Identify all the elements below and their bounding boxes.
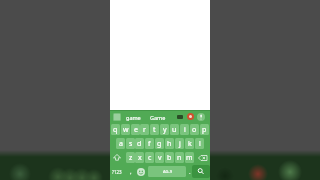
staticText: game — [126, 114, 141, 121]
button[interactable]: m — [185, 152, 194, 163]
button[interactable]: . — [187, 166, 193, 177]
staticText: Game — [150, 114, 166, 121]
button[interactable]: AG-9 — [148, 166, 186, 177]
staticText: h — [167, 139, 172, 149]
button[interactable]: j — [175, 138, 184, 149]
button[interactable]: b — [165, 152, 174, 163]
button[interactable] — [113, 113, 121, 121]
button[interactable]: u — [170, 124, 179, 135]
button[interactable]: r — [140, 124, 149, 135]
staticText: y — [163, 125, 167, 135]
staticText: m — [186, 153, 193, 163]
staticText: d — [137, 139, 142, 149]
button[interactable] — [177, 115, 183, 119]
button[interactable]: a — [116, 138, 125, 149]
button[interactable]: p — [200, 124, 209, 135]
button[interactable]: d — [135, 138, 144, 149]
button[interactable]: e — [131, 124, 140, 135]
staticText: z — [129, 153, 133, 163]
button[interactable]: l — [195, 138, 204, 149]
button[interactable]: y — [160, 124, 169, 135]
staticText: j — [179, 139, 181, 149]
button[interactable] — [197, 113, 205, 121]
button[interactable]: z — [126, 152, 135, 163]
button[interactable]: w — [121, 124, 130, 135]
staticText: n — [177, 153, 182, 163]
button[interactable] — [196, 152, 210, 163]
staticText: o — [192, 125, 197, 135]
button[interactable] — [192, 165, 210, 178]
staticText: k — [188, 139, 192, 149]
staticText: u — [172, 125, 177, 135]
staticText: f — [148, 139, 151, 149]
button[interactable]: i — [180, 124, 189, 135]
button[interactable]: o — [190, 124, 199, 135]
button[interactable]: game — [124, 112, 142, 122]
staticText: . — [189, 168, 191, 176]
staticText: a — [119, 139, 123, 149]
staticText: AG-9 — [163, 169, 172, 174]
button[interactable]: s — [126, 138, 135, 149]
staticText: ?123 — [112, 169, 122, 175]
staticText: b — [167, 153, 172, 163]
staticText: w — [123, 125, 129, 135]
button[interactable] — [187, 113, 194, 120]
button[interactable]: Game — [148, 112, 168, 122]
staticText: p — [202, 125, 207, 135]
button[interactable] — [110, 152, 124, 163]
button[interactable]: k — [185, 138, 194, 149]
staticText: i — [184, 125, 186, 135]
button[interactable]: v — [155, 152, 164, 163]
button[interactable]: f — [145, 138, 154, 149]
staticText: e — [134, 125, 138, 135]
button[interactable]: ?123 — [110, 166, 124, 177]
button[interactable]: x — [135, 152, 144, 163]
button[interactable]: n — [175, 152, 184, 163]
staticText: q — [113, 125, 118, 135]
button[interactable]: h — [165, 138, 174, 149]
button[interactable]: g — [155, 138, 164, 149]
button[interactable]: t — [150, 124, 159, 135]
staticText: x — [138, 153, 142, 163]
staticText: s — [129, 139, 133, 149]
staticText: c — [148, 153, 152, 163]
button[interactable]: , — [127, 166, 135, 177]
button[interactable] — [137, 168, 145, 176]
button[interactable]: q — [111, 124, 120, 135]
staticText: v — [158, 153, 162, 163]
staticText: r — [143, 125, 146, 135]
staticText: l — [199, 139, 201, 149]
staticText: t — [153, 125, 156, 135]
button[interactable]: c — [145, 152, 154, 163]
staticText: , — [130, 168, 132, 176]
staticText: g — [157, 139, 162, 149]
